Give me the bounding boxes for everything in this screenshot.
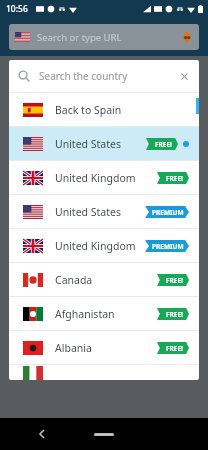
staticText: PREMIUM [152, 242, 184, 251]
staticText: Afghanistan [55, 307, 115, 321]
staticText: PREMIUM [152, 208, 184, 217]
staticText: 10:56 [6, 3, 28, 15]
staticText: United Kingdom [55, 171, 136, 185]
button[interactable]: United Kingdom [9, 229, 199, 262]
button[interactable]: Clear [179, 71, 190, 82]
button[interactable]: Back to Spain [9, 93, 199, 126]
button[interactable]: United States [9, 127, 199, 160]
button[interactable]: Search or type URL [9, 24, 199, 50]
staticText: FREE! [155, 140, 172, 149]
button[interactable]: Albania [9, 331, 199, 364]
staticText: United Kingdom [55, 239, 136, 253]
staticText: FREE! [166, 174, 183, 183]
staticText: Search the country [39, 69, 128, 83]
staticText: FREE! [166, 276, 183, 285]
staticText: Canada [55, 273, 93, 287]
staticText: United States [55, 205, 121, 219]
staticText: FREE! [166, 344, 183, 353]
staticText: FREE! [166, 310, 183, 319]
button[interactable]: Afghanistan [9, 297, 199, 330]
button[interactable]: United Kingdom [9, 161, 199, 194]
button[interactable]: United States [9, 195, 199, 228]
other: Incognito [181, 31, 193, 43]
button[interactable] [9, 365, 199, 380]
staticText: United States [55, 137, 121, 151]
staticText: Search or type URL [37, 31, 122, 44]
button[interactable]: Back [32, 424, 52, 444]
button[interactable]: Search [9, 60, 199, 92]
staticText: Albania [55, 341, 92, 355]
button[interactable]: Home [94, 433, 114, 436]
button[interactable]: Canada [9, 263, 199, 296]
staticText: Back to Spain [55, 103, 122, 117]
other: Search [18, 70, 30, 82]
